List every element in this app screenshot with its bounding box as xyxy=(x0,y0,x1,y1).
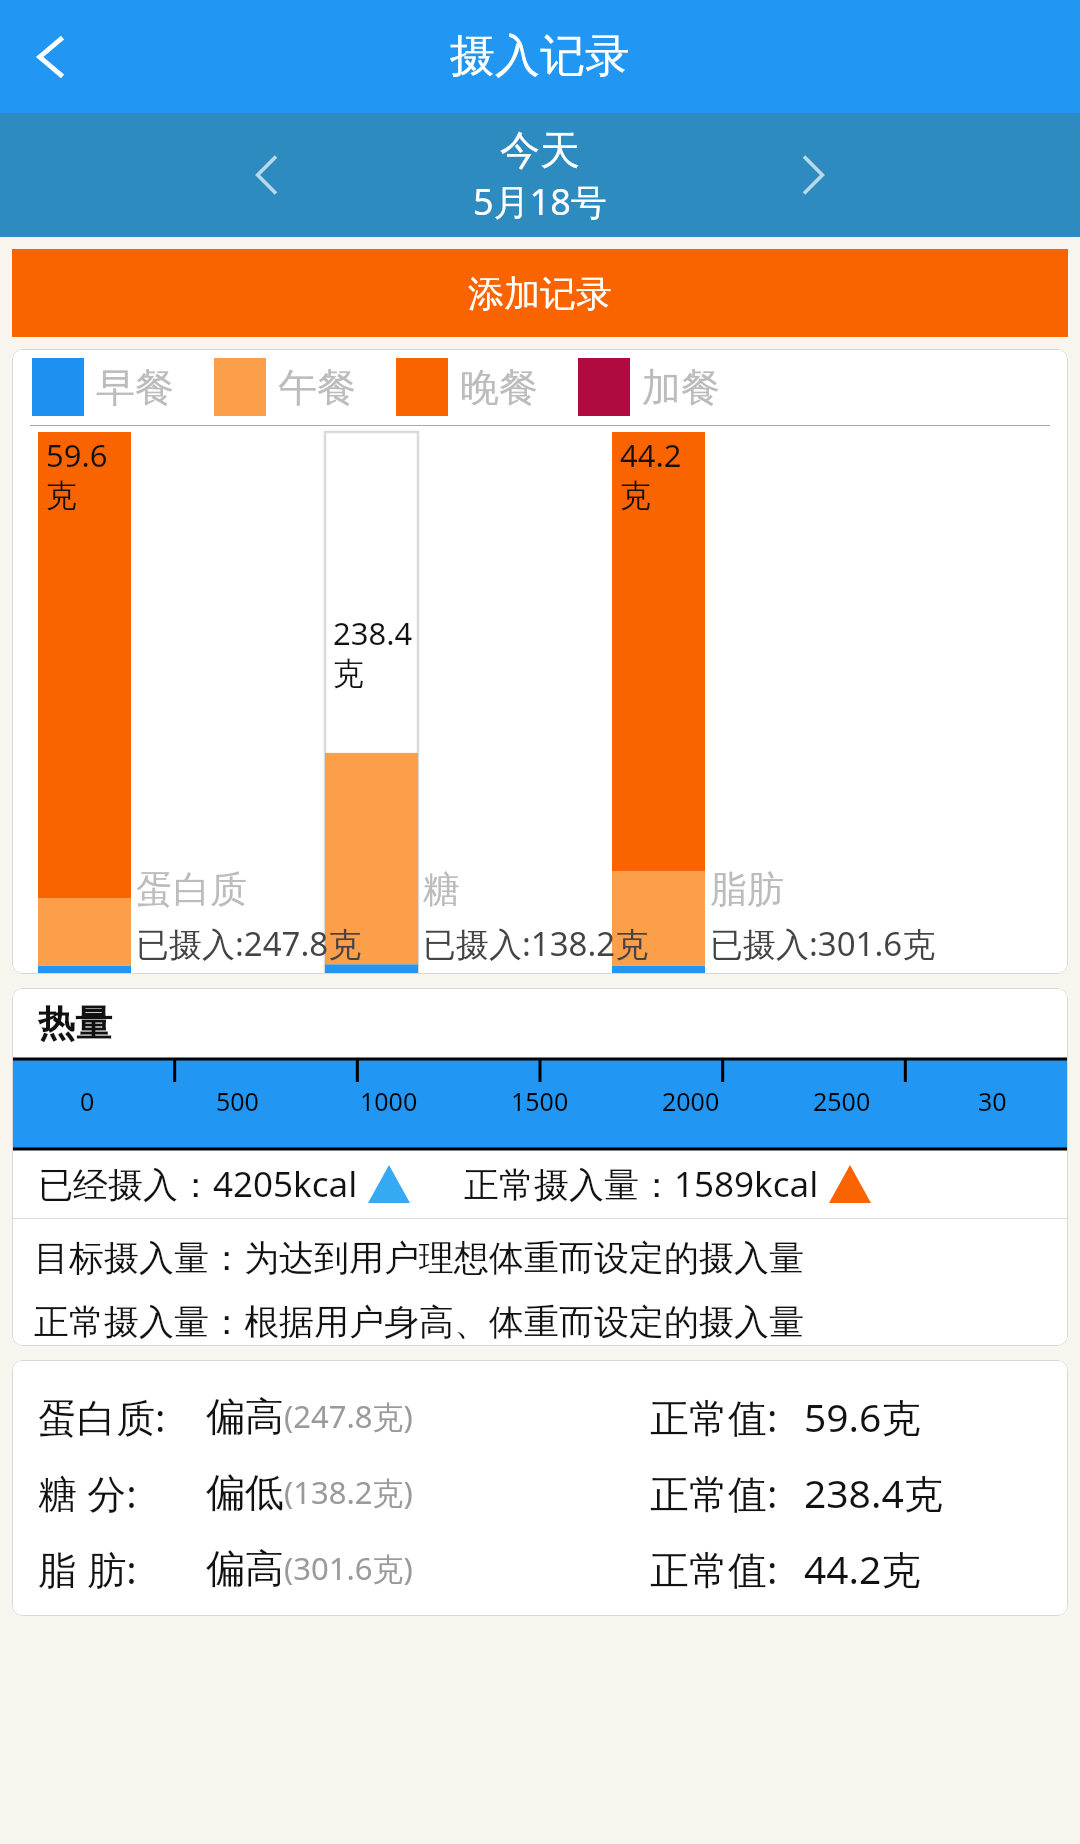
staticText: 0 xyxy=(80,1084,95,1118)
staticText: 5月18号 xyxy=(473,177,607,226)
staticText: 正常值: xyxy=(650,1466,778,1519)
button[interactable]: Previous day xyxy=(232,139,304,211)
staticText: 59.6 xyxy=(46,434,108,476)
staticText: (247.8克) xyxy=(284,1395,413,1437)
staticText: 1500 xyxy=(511,1084,569,1118)
staticText: 蛋白质 xyxy=(136,866,247,913)
staticText: 正常值: xyxy=(650,1390,778,1443)
staticText: 44.2 xyxy=(620,434,682,476)
staticText: 糖 分: xyxy=(38,1466,137,1519)
staticText: 目标摄入量：为达到用户理想体重而设定的摄入量 xyxy=(34,1236,804,1280)
staticText: 偏低 xyxy=(206,1468,284,1517)
staticText: 偏高 xyxy=(206,1392,284,1441)
staticText: 2000 xyxy=(662,1084,720,1118)
staticText: 热量 xyxy=(38,1000,112,1047)
button[interactable]: Next day xyxy=(776,139,848,211)
staticText: 238.4克 xyxy=(804,1466,943,1519)
staticText: 偏高 xyxy=(206,1544,284,1593)
staticText: 已摄入:138.2克 xyxy=(423,921,649,966)
staticText: 摄入记录 xyxy=(450,28,630,85)
button[interactable]: 添加记录 xyxy=(12,249,1068,337)
staticText: (301.6克) xyxy=(284,1547,413,1589)
staticText: 脂 肪: xyxy=(38,1542,137,1595)
staticText: 糖 xyxy=(423,866,460,913)
staticText: 59.6克 xyxy=(804,1390,921,1443)
staticText: 500 xyxy=(216,1084,259,1118)
staticText: 正常摄入量：根据用户身高、体重而设定的摄入量 xyxy=(34,1300,804,1344)
staticText: 蛋白质: xyxy=(38,1390,166,1443)
staticText: 已经摄入：4205kcal xyxy=(38,1160,358,1208)
staticText: 克 xyxy=(46,476,77,515)
staticText: 30 xyxy=(978,1084,1007,1118)
staticText: 今天 xyxy=(500,125,580,175)
staticText: 午餐 xyxy=(278,363,356,412)
staticText: 克 xyxy=(620,476,651,515)
staticText: 添加记录 xyxy=(468,271,612,316)
staticText: 238.4 xyxy=(333,612,413,654)
staticText: 正常值: xyxy=(650,1542,778,1595)
staticText: 已摄入:301.6克 xyxy=(710,921,936,966)
staticText: 早餐 xyxy=(96,363,174,412)
staticText: 已摄入:247.8克 xyxy=(136,921,362,966)
staticText: 晚餐 xyxy=(460,363,538,412)
staticText: 1000 xyxy=(360,1084,418,1118)
staticText: 2500 xyxy=(813,1084,871,1118)
staticText: 加餐 xyxy=(642,363,720,412)
staticText: (138.2克) xyxy=(284,1471,413,1513)
staticText: 克 xyxy=(333,654,364,693)
staticText: 脂肪 xyxy=(710,866,784,913)
button[interactable]: Back xyxy=(12,17,92,97)
staticText: 正常摄入量：1589kcal xyxy=(464,1160,819,1208)
staticText: 44.2克 xyxy=(804,1542,921,1595)
